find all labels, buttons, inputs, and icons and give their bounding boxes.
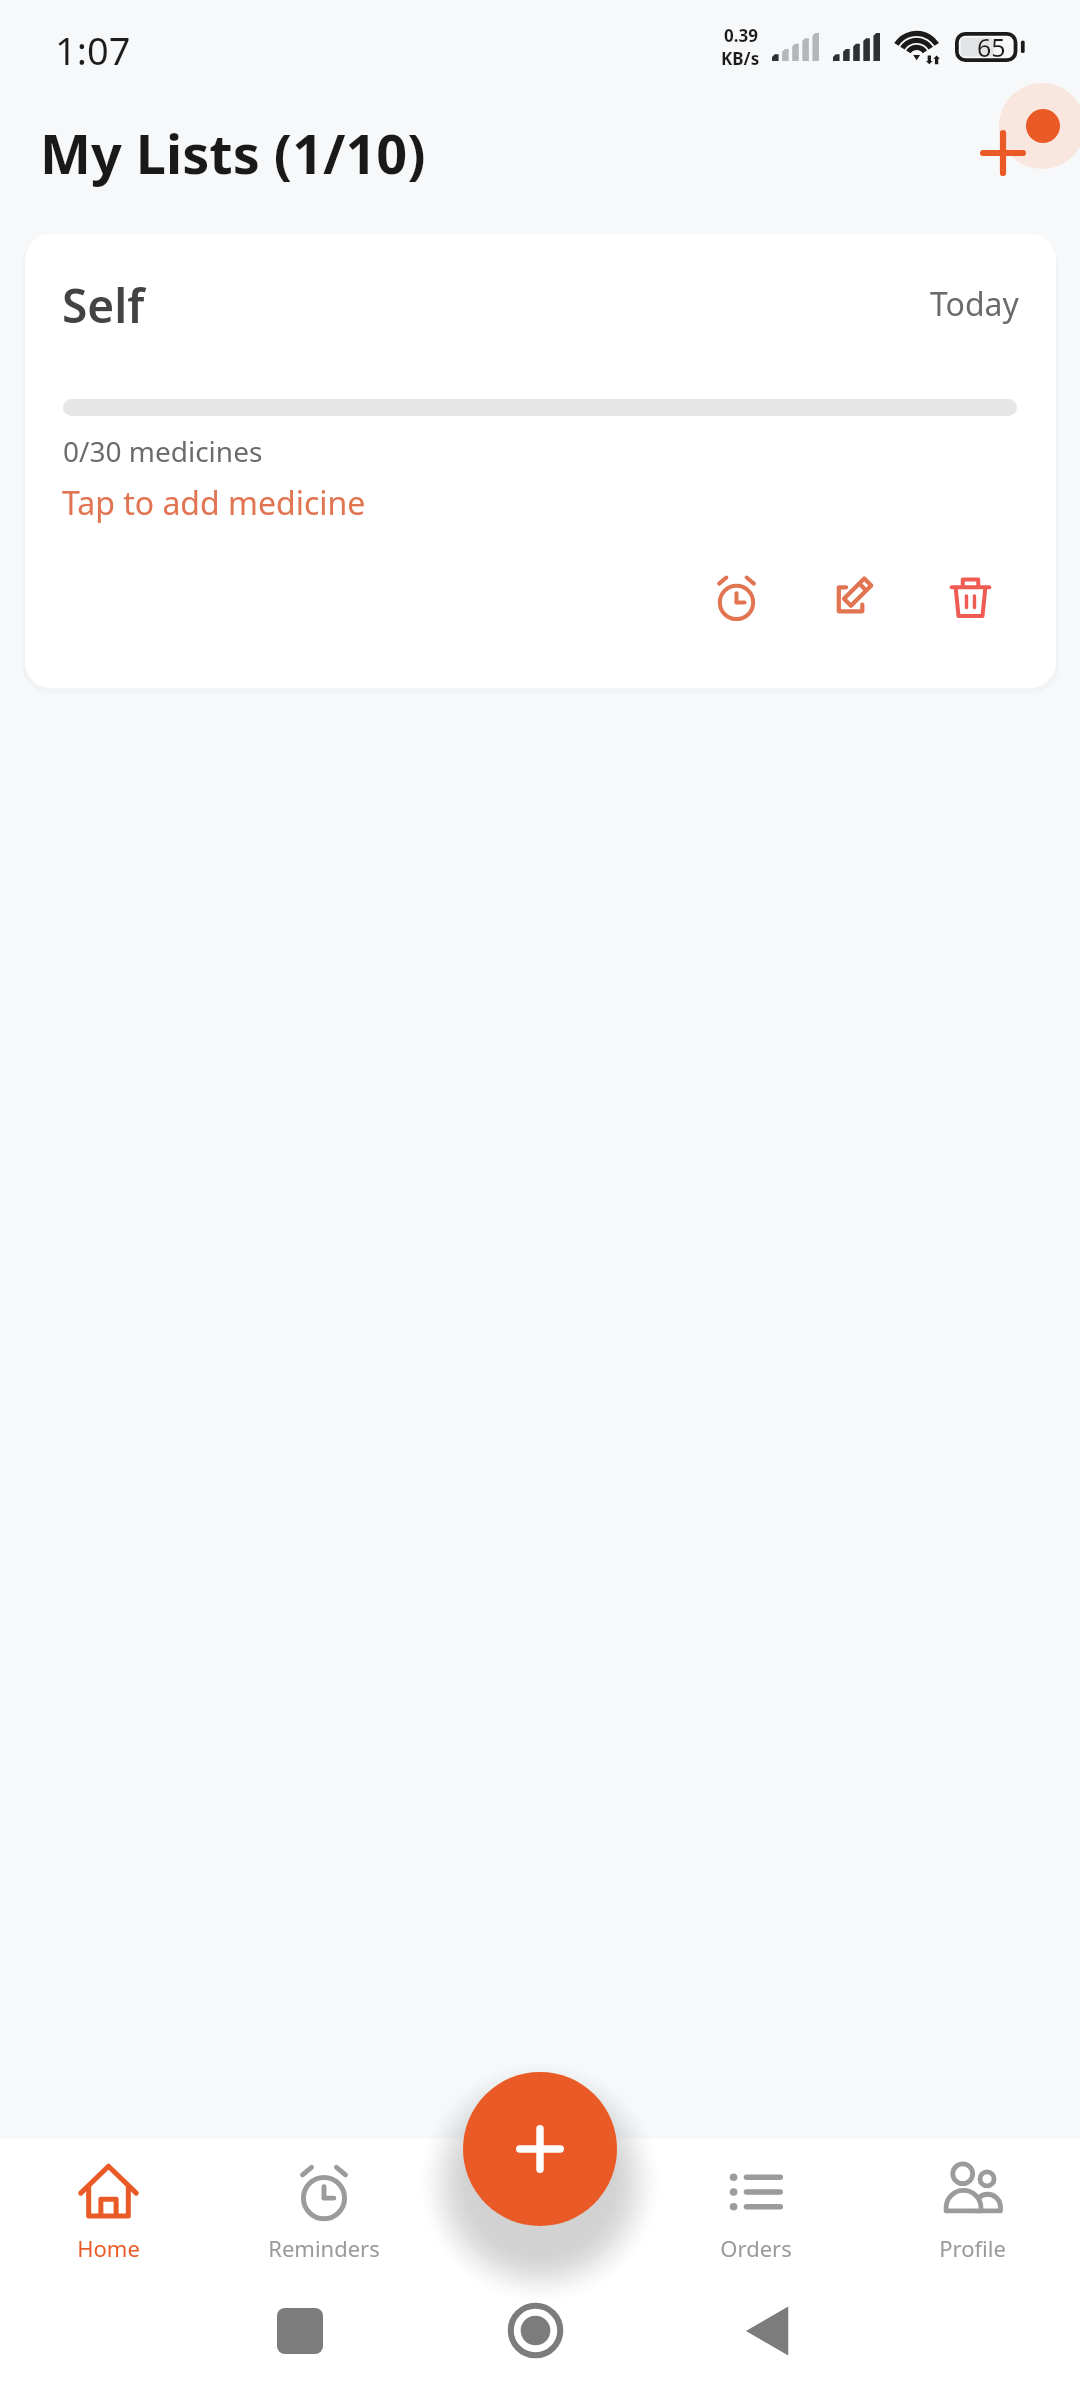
staticText: Orders xyxy=(720,2233,792,2263)
staticText: Home xyxy=(77,2233,140,2263)
staticText: 65 xyxy=(977,30,1006,64)
staticText: Today xyxy=(930,282,1019,326)
button[interactable]: Edit list xyxy=(820,561,891,632)
staticText: Tap to add medicine xyxy=(62,481,366,525)
button[interactable]: Profile xyxy=(864,2160,1080,2280)
button[interactable]: Home xyxy=(0,2160,216,2280)
button[interactable]: Orders xyxy=(648,2160,864,2280)
staticText: Profile xyxy=(939,2233,1006,2263)
staticText: 1:07 xyxy=(55,24,131,76)
button[interactable]: Delete list xyxy=(935,562,1006,633)
staticText: My Lists (1/10) xyxy=(40,116,426,190)
staticText: Self xyxy=(62,274,145,337)
staticText: Reminders xyxy=(268,2233,380,2263)
button[interactable]: Reminders xyxy=(216,2160,432,2280)
staticText: 0.39 xyxy=(724,24,758,47)
button[interactable]: Add xyxy=(463,2072,617,2226)
button[interactable]: Self xyxy=(25,234,1056,688)
staticText: 0/30 medicines xyxy=(63,432,263,470)
button[interactable]: Add list xyxy=(957,107,1049,199)
staticText: KB/s xyxy=(721,47,760,70)
button[interactable]: Set reminder xyxy=(701,562,772,633)
